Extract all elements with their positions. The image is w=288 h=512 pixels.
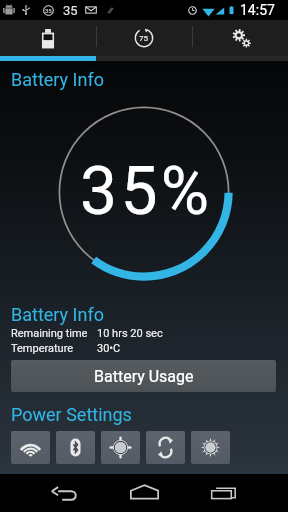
- staticText: 35: [45, 7, 52, 14]
- button[interactable]: Auto sync: [146, 431, 185, 464]
- staticText: 35%: [80, 153, 213, 230]
- staticText: Remaining time: [11, 327, 97, 340]
- button[interactable]: Battery: [0, 20, 96, 53]
- button[interactable]: Brightness: [191, 431, 230, 464]
- staticText: Battery Usage: [94, 367, 194, 386]
- button[interactable]: Recent apps: [184, 474, 264, 512]
- button[interactable]: Settings: [193, 20, 288, 53]
- staticText: Power Settings: [11, 404, 132, 425]
- button[interactable]: Wi-Fi: [11, 431, 50, 464]
- button[interactable]: Home: [104, 474, 184, 512]
- button[interactable]: Battery Usage: [11, 360, 276, 392]
- staticText: Battery Info: [11, 304, 104, 325]
- button[interactable]: Battery usage graph: [97, 20, 192, 53]
- staticText: 10 hrs 20 sec: [97, 327, 163, 340]
- button[interactable]: Location: [101, 431, 140, 464]
- staticText: 14:57: [240, 2, 275, 18]
- staticText: Temperature: [11, 342, 97, 355]
- staticText: 35: [63, 3, 78, 18]
- staticText: 75: [139, 34, 148, 43]
- button[interactable]: Bluetooth: [56, 431, 95, 464]
- staticText: Battery Info: [11, 69, 104, 90]
- staticText: 30•C: [97, 342, 121, 355]
- button[interactable]: Back: [24, 474, 104, 512]
